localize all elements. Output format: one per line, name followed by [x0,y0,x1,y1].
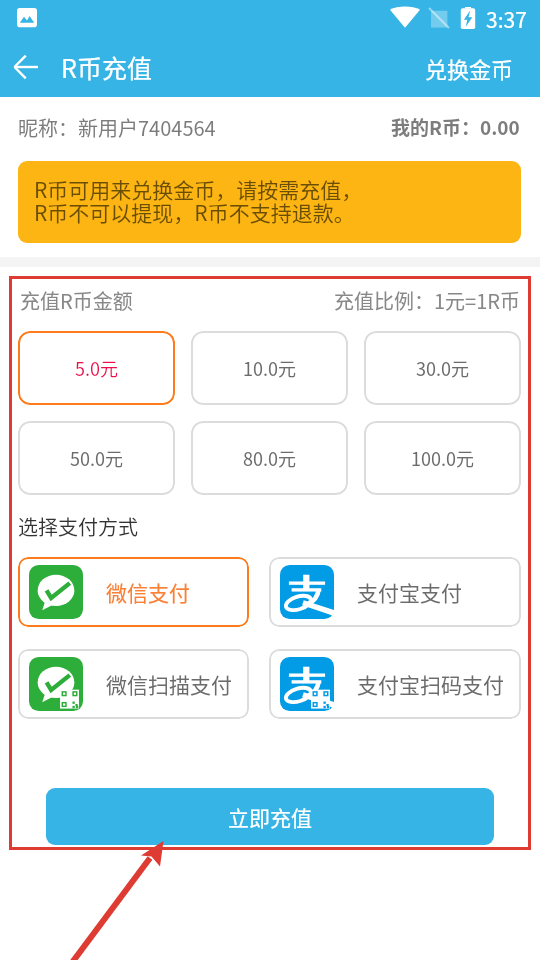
staticText: 支付宝支付 [357,577,462,607]
staticText: R币可用来兑换金币，请按需充值， R币不可以提现，R币不支持退款。 [34,174,363,227]
staticText: R币充值 [61,49,152,85]
button[interactable]: 支付宝扫码支付 [269,649,521,719]
button[interactable]: 80.0元 [191,421,348,495]
button[interactable]: 兑换金币 [399,38,540,95]
staticText: 10.0元 [243,355,296,381]
staticText: 充值R币金额 [20,286,133,315]
button[interactable]: Back [6,49,46,89]
button[interactable]: 50.0元 [18,421,175,495]
button[interactable]: 微信支付 [18,557,249,627]
staticText: 5.0元 [75,355,118,381]
staticText: 立即充值 [228,802,312,832]
staticText: 80.0元 [243,445,296,471]
button[interactable]: 微信扫描支付 [18,649,249,719]
button[interactable]: 10.0元 [191,331,348,405]
button[interactable]: 立即充值 [46,788,494,845]
staticText: 支付宝扫码支付 [357,669,504,699]
staticText: 微信扫描支付 [106,669,232,699]
staticText: 3:37 [486,4,527,34]
staticText: 100.0元 [411,445,474,471]
button[interactable]: 支付宝支付 [269,557,521,627]
staticText: 50.0元 [70,445,123,471]
staticText: 30.0元 [416,355,469,381]
staticText: 选择支付方式 [18,512,138,541]
staticText: 微信支付 [106,577,190,607]
staticText: 充值比例：1元=1R币 [334,286,520,315]
button[interactable]: 30.0元 [364,331,521,405]
staticText: 兑换金币 [425,52,514,81]
staticText: 我的R币：0.00 [391,113,520,141]
button[interactable]: 100.0元 [364,421,521,495]
button[interactable]: 5.0元 [18,331,175,405]
staticText: 昵称：新用户7404564 [18,113,216,142]
